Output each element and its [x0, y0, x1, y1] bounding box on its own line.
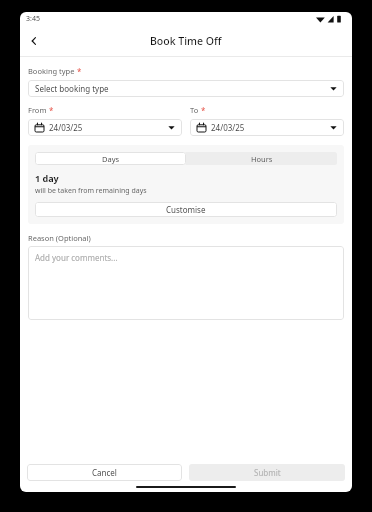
- staticText: Book Time Off: [150, 34, 222, 48]
- staticText: will be taken from remaining days: [35, 186, 147, 196]
- button[interactable]: Cancel: [27, 464, 182, 481]
- button[interactable]: Days: [35, 152, 186, 165]
- button[interactable]: Back: [24, 31, 44, 51]
- staticText: Reason (Optional): [28, 233, 91, 243]
- staticText: Add your comments...: [35, 252, 118, 263]
- staticText: 24/03/25: [211, 122, 245, 133]
- staticText: *: [77, 66, 82, 77]
- staticText: Booking type: [28, 66, 75, 76]
- staticText: *: [201, 105, 206, 116]
- staticText: *: [49, 105, 54, 116]
- staticText: From: [28, 105, 47, 115]
- staticText: 3:45: [26, 14, 40, 24]
- staticText: Customise: [166, 204, 206, 215]
- button[interactable]: 24/03/25: [190, 119, 344, 136]
- button[interactable]: Submit: [189, 464, 345, 481]
- button[interactable]: Customise: [35, 202, 337, 217]
- staticText: Days: [102, 154, 120, 164]
- staticText: Select booking type: [35, 83, 109, 94]
- button[interactable]: Add your comments...: [28, 246, 344, 320]
- button[interactable]: 24/03/25: [28, 119, 182, 136]
- button[interactable]: Select booking type: [28, 80, 344, 97]
- staticText: Hours: [251, 154, 273, 164]
- staticText: Submit: [254, 467, 281, 478]
- button[interactable]: Hours: [186, 152, 337, 165]
- staticText: Cancel: [92, 467, 117, 478]
- staticText: To: [190, 105, 199, 115]
- staticText: 24/03/25: [49, 122, 83, 133]
- staticText: 1 day: [35, 172, 59, 184]
